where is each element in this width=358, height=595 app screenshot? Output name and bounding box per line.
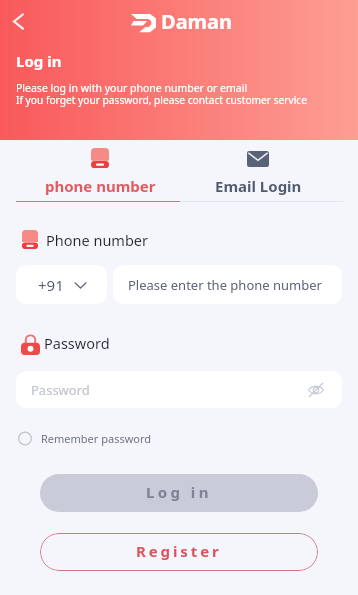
staticText: Please enter the phone number: [128, 276, 322, 294]
button[interactable]: Email Login: [174, 142, 344, 202]
button[interactable]: Log in: [40, 474, 318, 512]
staticText: Log in: [146, 482, 212, 502]
button[interactable]: Register: [40, 533, 318, 571]
staticText: Register: [136, 541, 222, 561]
staticText: phone number: [45, 176, 156, 196]
button[interactable]: Show password: [304, 378, 328, 402]
staticText: Email Login: [215, 176, 302, 196]
staticText: If you forget your password, please cont…: [16, 93, 307, 107]
button[interactable]: phone number: [16, 142, 186, 202]
staticText: Please log in with your phone number or …: [16, 81, 248, 95]
button[interactable]: +91: [16, 265, 107, 304]
button[interactable]: Please enter the phone number: [113, 265, 342, 304]
staticText: Remember password: [41, 431, 152, 446]
button[interactable]: Password: [16, 371, 342, 408]
staticText: Daman: [161, 8, 233, 35]
staticText: Log in: [16, 51, 62, 71]
staticText: Password: [44, 333, 110, 353]
button[interactable]: Back: [1, 4, 35, 38]
staticText: Phone number: [46, 230, 148, 250]
button[interactable]: Remember password: [18, 428, 152, 448]
staticText: +91: [38, 275, 64, 295]
staticText: Password: [31, 381, 90, 399]
